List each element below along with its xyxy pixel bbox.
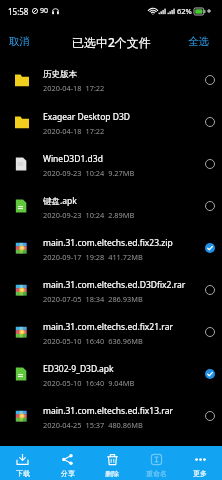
button[interactable]: 删除 <box>90 446 134 480</box>
staticText: 重命名 <box>146 469 167 478</box>
staticText: WineD3D1.d3d <box>43 153 103 165</box>
staticText: 15:58 <box>8 6 29 17</box>
button[interactable]: 分享 <box>45 446 90 480</box>
staticText: 2020-09-23 10:24 2.89MB <box>43 210 135 220</box>
button[interactable]: Select item <box>200 112 220 132</box>
staticText: 90 <box>40 6 49 16</box>
button[interactable]: Select item <box>200 280 220 300</box>
button[interactable]: Select item <box>200 322 220 342</box>
button[interactable]: Select item <box>200 238 220 258</box>
staticText: 更多 <box>193 469 207 478</box>
staticText: 取消 <box>9 35 30 48</box>
staticText: main.31.com.eltechs.ed.D3Dfix2.rar <box>43 279 186 291</box>
staticText: 2020-04-25 15:37 480.86MB <box>43 420 143 430</box>
staticText: 全选 <box>188 35 209 48</box>
button[interactable]: main.31.com.eltechs.ed.fix21.rar <box>0 311 222 353</box>
button[interactable]: Select item <box>200 154 220 174</box>
staticText: main.31.com.eltechs.ed.fix13.rar <box>43 405 173 417</box>
button[interactable]: ED302-9_D3D.apk <box>0 353 222 395</box>
button[interactable]: WineD3D1.d3d <box>0 143 222 185</box>
staticText: 2020-05-10 16:40 9.04MB <box>43 378 135 388</box>
staticText: main.31.com.eltechs.ed.fix21.rar <box>43 321 173 333</box>
staticText: 键盘.apk <box>43 195 77 207</box>
button[interactable]: main.31.com.eltechs.ed.fix13.rar <box>0 395 222 437</box>
staticText: main.31.com.eltechs.ed.fix23.zip <box>43 237 173 249</box>
button[interactable]: 更多 <box>178 446 222 480</box>
button[interactable]: main.31.com.eltechs.ed.fix23.zip <box>0 227 222 269</box>
button[interactable]: 重命名 <box>134 446 178 480</box>
staticText: 历史版本 <box>43 69 77 80</box>
staticText: 下载 <box>16 469 30 478</box>
staticText: 2020-04-18 17:22 <box>43 83 105 93</box>
staticText: Exagear Desktop D3D <box>43 111 131 123</box>
button[interactable]: main.31.com.eltechs.ed.D3Dfix2.rar <box>0 269 222 311</box>
button[interactable]: Select item <box>200 406 220 426</box>
button[interactable]: Select item <box>200 364 220 384</box>
button[interactable]: 键盘.apk <box>0 185 222 227</box>
staticText: 2020-09-17 19:28 411.72MB <box>43 252 143 262</box>
button[interactable]: Select item <box>200 70 220 90</box>
staticText: 已选中2个文件 <box>72 34 151 50</box>
button[interactable]: Select item <box>200 196 220 216</box>
staticText: 2020-09-23 10:24 9.27MB <box>43 168 135 178</box>
staticText: 2020-07-05 18:34 286.93MB <box>43 294 143 304</box>
staticText: 2020-04-18 17:22 <box>43 126 105 136</box>
button[interactable]: Exagear Desktop D3D <box>0 101 222 143</box>
staticText: 62% <box>177 6 192 16</box>
staticText: 删除 <box>105 469 119 478</box>
staticText: 分享 <box>61 469 75 478</box>
staticText: 2020-05-10 16:40 636.96MB <box>43 336 143 346</box>
button[interactable]: 取消 <box>0 24 40 59</box>
staticText: ED302-9_D3D.apk <box>43 363 114 375</box>
button[interactable]: 历史版本 <box>0 59 222 101</box>
button[interactable]: 下载 <box>0 446 45 480</box>
button[interactable]: 全选 <box>178 24 222 59</box>
